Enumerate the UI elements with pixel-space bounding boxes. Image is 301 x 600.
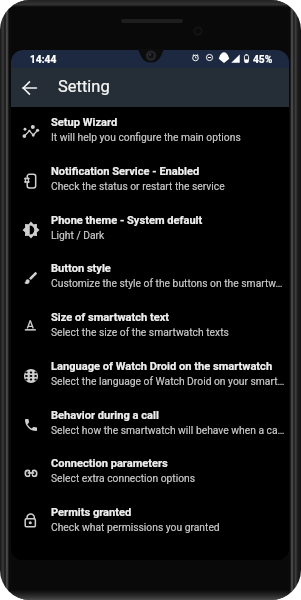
staticText: Check the status or restart the service: [51, 180, 225, 192]
staticText: Check what permissions you granted: [51, 521, 220, 533]
staticText: Select the size of the smartwatch texts: [51, 326, 229, 338]
button[interactable]: Language of Watch Droid on the smartwatc…: [11, 351, 289, 400]
staticText: Size of smartwatch text: [51, 311, 170, 324]
button[interactable]: Back: [12, 71, 46, 105]
button[interactable]: Size of smartwatch text: [11, 302, 289, 351]
staticText: Button style: [51, 262, 111, 275]
staticText: Behavior during a call: [51, 409, 159, 422]
staticText: Select extra connection options: [51, 472, 196, 484]
staticText: Setting: [58, 77, 110, 96]
staticText: Connection parameters: [51, 457, 168, 470]
staticText: Language of Watch Droid on the smartwatc…: [51, 360, 273, 373]
staticText: Customize the style of the buttons on th…: [51, 277, 283, 289]
button[interactable]: Connection parameters: [11, 448, 289, 497]
staticText: Select how the smartwatch will behave wh…: [51, 424, 285, 436]
button[interactable]: Phone theme - System default: [11, 205, 289, 254]
button[interactable]: Behavior during a call: [11, 400, 289, 449]
staticText: 45%: [253, 54, 273, 66]
button[interactable]: Permits granted: [11, 497, 289, 546]
staticText: Notification Service - Enabled: [51, 165, 200, 178]
staticText: Permits granted: [51, 506, 132, 519]
button[interactable]: Button style: [11, 253, 289, 302]
staticText: Setup Wizard: [51, 116, 118, 129]
button[interactable]: Notification Service - Enabled: [11, 156, 289, 205]
button[interactable]: Setup Wizard: [11, 107, 289, 156]
staticText: Select the language of Watch Droid on yo…: [51, 375, 285, 387]
staticText: 14:44: [30, 54, 57, 66]
staticText: Phone theme - System default: [51, 214, 203, 227]
staticText: Light / Dark: [51, 229, 105, 241]
staticText: It will help you configure the main opti…: [51, 131, 241, 143]
